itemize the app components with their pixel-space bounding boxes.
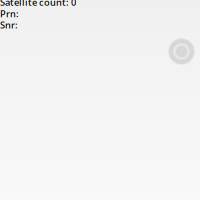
staticText: Prn: bbox=[0, 7, 19, 20]
staticText: Snr: bbox=[0, 19, 18, 31]
button[interactable]: Record bbox=[168, 38, 195, 65]
staticText: Satellite count: 0 bbox=[0, 0, 76, 8]
